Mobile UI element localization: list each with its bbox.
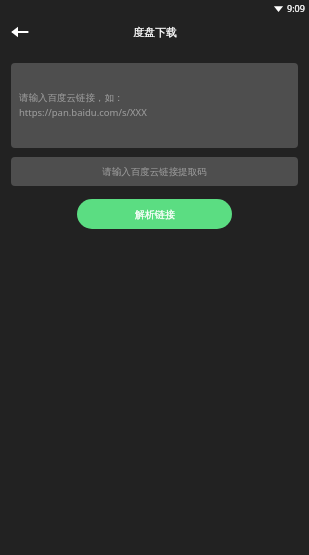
staticText: 度盘下载 — [133, 25, 177, 39]
button[interactable]: 解析链接 — [77, 199, 232, 229]
staticText: 9:09 — [287, 2, 305, 14]
button[interactable]: 请输入百度云链接提取码 — [11, 157, 298, 186]
staticText: 解析链接 — [135, 208, 175, 221]
button[interactable]: 请输入百度云链接，如： — [11, 63, 298, 148]
staticText: 请输入百度云链接，如： — [19, 92, 124, 104]
staticText: 请输入百度云链接提取码 — [102, 166, 207, 178]
staticText: https://pan.baidu.com/s/XXX — [19, 106, 147, 119]
button[interactable]: Back — [0, 16, 40, 48]
